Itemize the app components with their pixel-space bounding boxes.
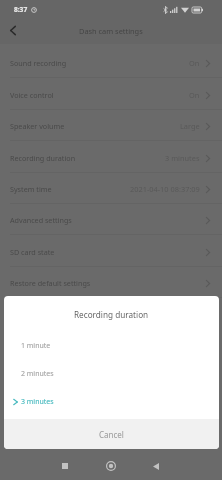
staticText: Sound recording <box>10 58 67 68</box>
button[interactable]: Back <box>142 452 170 480</box>
staticText: Advanced settings <box>10 215 72 225</box>
button[interactable]: 2 minutes <box>4 360 219 388</box>
button[interactable]: Home <box>97 452 125 480</box>
staticText: Speaker volume <box>10 121 65 131</box>
button[interactable]: 3 minutes <box>4 388 219 416</box>
button[interactable]: Cancel <box>4 419 219 449</box>
staticText: Recording duration <box>10 153 76 163</box>
staticText: 2021-04-10 08:37:09 <box>130 184 200 194</box>
staticText: Dash cam settings <box>79 26 143 36</box>
button[interactable]: Recents <box>51 452 79 480</box>
staticText: Restore default settings <box>10 278 91 288</box>
staticText: Voice control <box>10 90 54 100</box>
staticText: 8:37 <box>14 5 28 14</box>
button[interactable]: Recording duration <box>0 142 222 173</box>
staticText: 3 minutes <box>165 153 200 163</box>
staticText: On <box>189 58 200 68</box>
button[interactable]: 1 minute <box>4 332 219 360</box>
staticText: Cancel <box>99 429 124 440</box>
staticText: On <box>189 90 200 100</box>
button[interactable]: Advanced settings <box>0 204 222 235</box>
button[interactable]: Restore default settings <box>0 267 222 298</box>
staticText: System time <box>10 184 52 194</box>
staticText: 3 minutes <box>21 397 54 407</box>
button[interactable]: Back <box>0 19 26 42</box>
staticText: 1 minute <box>21 341 51 351</box>
staticText: Large <box>180 121 200 131</box>
staticText: 2 minutes <box>21 369 54 379</box>
staticText: Recording duration <box>74 309 149 320</box>
staticText: SD card state <box>10 247 55 257</box>
